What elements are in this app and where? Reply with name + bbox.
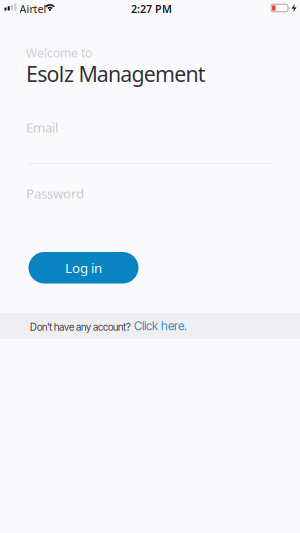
staticText: Click here. xyxy=(134,319,187,333)
staticText: Password xyxy=(26,184,84,202)
button[interactable]: Don't have any account? xyxy=(0,313,300,339)
staticText: Welcome to xyxy=(26,45,92,61)
button[interactable]: Email xyxy=(26,118,272,163)
staticText: Email xyxy=(26,118,58,136)
staticText: Airtel xyxy=(19,2,46,16)
button[interactable]: Log in xyxy=(28,252,138,283)
button[interactable]: Password xyxy=(26,184,272,224)
staticText: 2:27 PM xyxy=(131,2,172,16)
staticText: Don't have any account? xyxy=(30,321,131,333)
staticText: Log in xyxy=(65,259,102,277)
staticText: Esolz Management xyxy=(26,59,206,88)
